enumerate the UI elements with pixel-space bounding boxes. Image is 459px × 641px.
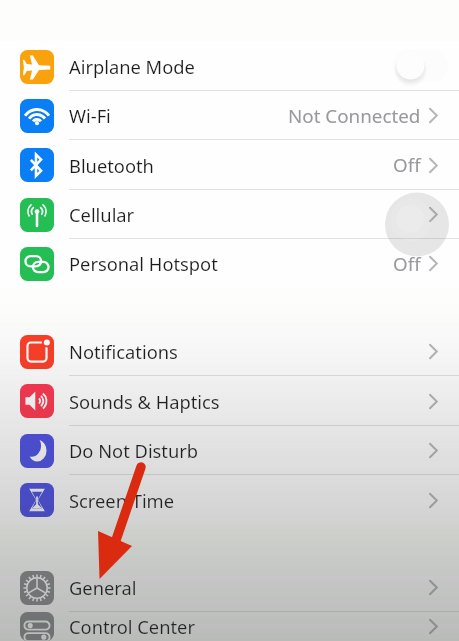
staticText: Bluetooth bbox=[69, 153, 154, 178]
button[interactable]: Notifications bbox=[0, 327, 459, 376]
button[interactable]: Do Not Disturb bbox=[0, 426, 459, 475]
staticText: Wi-Fi bbox=[69, 103, 111, 128]
button[interactable]: Airplane Mode toggle bbox=[393, 50, 448, 83]
staticText: Do Not Disturb bbox=[69, 438, 199, 463]
staticText: Off bbox=[393, 251, 421, 277]
staticText: Sounds & Haptics bbox=[69, 389, 220, 414]
button[interactable]: Cellular bbox=[0, 190, 459, 239]
button[interactable]: Screen Time bbox=[0, 475, 459, 525]
staticText: Screen Time bbox=[69, 488, 175, 513]
button[interactable]: Bluetooth bbox=[0, 140, 459, 190]
staticText: General bbox=[69, 575, 137, 600]
button[interactable]: Airplane Mode bbox=[0, 42, 459, 91]
button[interactable]: Control Center bbox=[0, 612, 459, 641]
staticText: Personal Hotspot bbox=[69, 251, 218, 276]
staticText: Notifications bbox=[69, 339, 178, 364]
staticText: Control Center bbox=[69, 614, 195, 639]
button[interactable]: Personal Hotspot bbox=[0, 239, 459, 288]
button[interactable]: Sounds & Haptics bbox=[0, 376, 459, 426]
staticText: Off bbox=[393, 152, 421, 178]
staticText: Not Connected bbox=[288, 103, 421, 129]
staticText: Cellular bbox=[69, 202, 135, 227]
staticText: Airplane Mode bbox=[69, 54, 195, 79]
button[interactable]: General bbox=[0, 563, 459, 612]
button[interactable]: Wi-Fi bbox=[0, 91, 459, 140]
